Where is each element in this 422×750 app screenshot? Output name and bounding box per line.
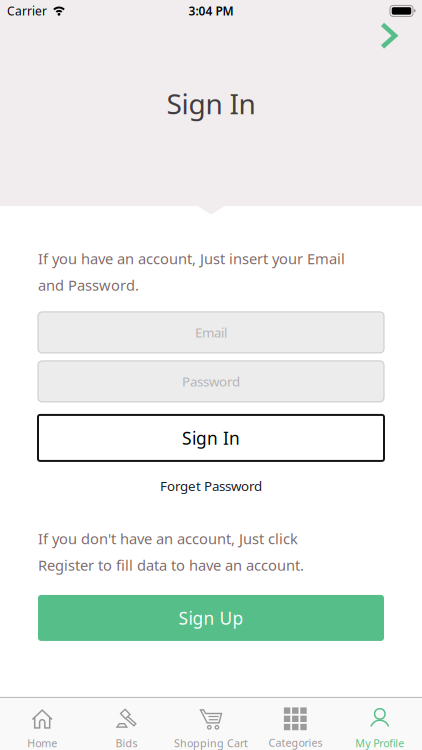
staticText: Categories [268,735,322,750]
staticText: My Profile [355,736,404,750]
button[interactable]: Categories [253,707,338,750]
staticText: Email [195,324,227,341]
button[interactable]: Skip [380,22,398,50]
button[interactable]: Home [0,707,84,750]
staticText: If you have an account, Just insert your… [38,249,345,268]
staticText: Password [182,373,240,390]
button[interactable]: Password [38,361,384,402]
button[interactable]: Forget Password [160,477,262,495]
staticText: and Password. [38,275,139,295]
staticText: If you don't have an account, Just click [38,529,298,548]
button[interactable]: Shopping Cart [169,707,253,750]
staticText: Sign In [182,426,240,449]
staticText: Carrier [7,3,47,19]
staticText: Sign Up [178,606,243,629]
button[interactable]: Sign In [38,415,384,461]
staticText: Register to fill data to have an account… [38,555,304,575]
staticText: Sign In [166,85,255,122]
staticText: 3:04 PM [188,3,233,19]
button[interactable]: Email [38,312,384,353]
button[interactable]: Bids [84,707,169,750]
button[interactable]: Sign Up [38,595,384,641]
staticText: Home [27,736,57,750]
staticText: Bids [116,736,138,750]
button[interactable]: My Profile [338,707,422,750]
staticText: Forget Password [160,477,262,495]
staticText: Shopping Cart [174,736,248,750]
